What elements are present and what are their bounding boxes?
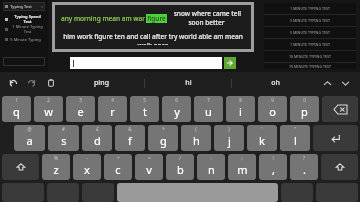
staticText: 2 (47, 97, 50, 103)
button[interactable]: ; (228, 154, 256, 180)
staticText: oh (271, 78, 280, 88)
staticText: + (117, 155, 120, 161)
button[interactable]: 3 (66, 96, 95, 122)
staticText: 1 MINUTE TYPING TEST (290, 6, 330, 11)
button[interactable]: " (280, 125, 310, 151)
button[interactable]: oh (232, 72, 318, 94)
button[interactable]: ' (247, 125, 277, 151)
button[interactable]: @ (14, 125, 45, 151)
staticText: 9 (271, 97, 274, 103)
button[interactable]: 1 MINUTE TYPING TEST (264, 3, 356, 14)
button[interactable]: 1 MINUTE TYPING TEST (264, 39, 356, 50)
staticText: 6 (175, 97, 178, 103)
staticText: r (110, 104, 115, 119)
staticText: t (143, 104, 147, 119)
button[interactable]: 5 Minute Typing (3, 34, 45, 44)
staticText: ; (241, 155, 243, 161)
staticText: h (193, 133, 200, 148)
staticText: q (13, 104, 20, 119)
staticText: 10 MINUTE TYPING TEST (289, 54, 331, 59)
staticText: 4 (111, 97, 114, 103)
button[interactable]: 3 MINUTE TYPING TEST (264, 15, 356, 26)
button[interactable] (3, 57, 45, 66)
staticText: : (210, 155, 212, 161)
staticText: 3 MINUTE TYPING TEST (290, 18, 330, 23)
staticText: 1 Minute Typing Test (10, 24, 45, 34)
button[interactable]: 1 Minute Typing Test (3, 24, 45, 34)
button[interactable]: 6 (162, 96, 191, 122)
button[interactable]: Undo (6, 76, 20, 90)
button[interactable]: ? (290, 154, 318, 180)
staticText: d (94, 133, 101, 148)
button[interactable]: 15 MINUTE TYPING TEST (264, 63, 356, 69)
button[interactable]: Shift (321, 154, 358, 180)
staticText: v (41, 5, 43, 9)
button[interactable]: Shift (2, 154, 39, 180)
staticText: 0 (303, 97, 306, 103)
staticText: w (44, 104, 53, 119)
staticText: ' (261, 126, 263, 132)
button[interactable]: / (166, 154, 194, 180)
button[interactable]: 0 (290, 96, 319, 122)
staticText: a (26, 133, 33, 148)
button[interactable]: 1 (2, 96, 31, 122)
staticText: 7 (207, 97, 210, 103)
button[interactable]: ) (214, 125, 244, 151)
button[interactable]: ! (259, 154, 287, 180)
staticText: figure (147, 14, 166, 23)
button[interactable]: £ (82, 125, 112, 151)
button[interactable]: 7 (194, 96, 223, 122)
button[interactable]: = (135, 154, 163, 180)
button[interactable]: - (73, 154, 101, 180)
staticText: l (294, 133, 297, 148)
staticText: @ (27, 126, 32, 132)
button[interactable]: Typing Speed Test (3, 14, 45, 24)
button[interactable]: & (115, 125, 145, 151)
button[interactable] (70, 57, 222, 69)
staticText: him work figure ten and call after try w… (60, 32, 246, 45)
staticText: any morning mean am war (60, 14, 146, 23)
staticText: snow where came tell soon better (167, 9, 246, 27)
button[interactable]: 4 (98, 96, 127, 122)
button[interactable]: 5 MINUTE TYPING TEST (264, 27, 356, 38)
button[interactable]: 9 (258, 96, 287, 122)
button[interactable]: Clipboard (44, 76, 58, 90)
staticText: ! (272, 155, 274, 161)
button[interactable]: Redo (25, 76, 39, 90)
button[interactable]: Next (336, 73, 354, 93)
button[interactable]: Enter (313, 125, 358, 151)
staticText: & (128, 126, 132, 132)
button[interactable]: Space (117, 183, 278, 202)
button[interactable]: 2 (34, 96, 63, 122)
staticText: e (77, 104, 84, 119)
button[interactable]: # (48, 125, 79, 151)
button[interactable]: Previous (318, 73, 336, 93)
staticText: 1 MINUTE TYPING TEST (290, 42, 330, 47)
button[interactable]: hi (145, 72, 231, 94)
staticText: k (259, 133, 265, 148)
button[interactable]: % (42, 154, 70, 180)
button[interactable]: 5 (130, 96, 159, 122)
staticText: ? (303, 155, 305, 161)
button[interactable]: ping (58, 72, 144, 94)
button[interactable]: * (148, 125, 178, 151)
button[interactable]: 8 (226, 96, 255, 122)
staticText: . (303, 162, 306, 177)
button[interactable]: 10 MINUTE TYPING TEST (264, 51, 356, 62)
staticText: , (272, 162, 275, 177)
staticText: * (162, 126, 165, 132)
staticText: x (84, 162, 90, 177)
button[interactable]: ( (181, 125, 211, 151)
button[interactable]: : (197, 154, 225, 180)
staticText: £ (96, 126, 99, 132)
button[interactable]: Submit (224, 57, 236, 69)
button[interactable]: + (104, 154, 132, 180)
button[interactable]: Typing Test (3, 2, 45, 11)
staticText: 1 (15, 97, 18, 103)
button[interactable]: Backspace (322, 96, 358, 122)
